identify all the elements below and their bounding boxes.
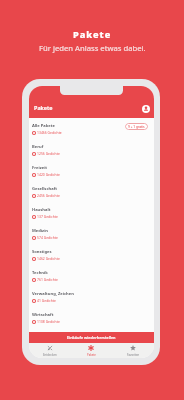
staticText: Haushalt xyxy=(32,207,51,213)
button[interactable]: Wirtschaft xyxy=(29,307,154,328)
staticText: 9 + 1 gratis xyxy=(128,125,145,129)
button[interactable]: Alle Pakete xyxy=(29,118,154,139)
staticText: 574 Gedichte xyxy=(37,235,58,240)
staticText: 41 Gedichte xyxy=(37,298,56,303)
button[interactable]: Freizeit xyxy=(29,160,154,181)
button[interactable]: Profil xyxy=(142,105,150,113)
staticText: 1108 Gedichte xyxy=(37,319,60,324)
staticText: Sonstiges xyxy=(32,249,52,255)
button[interactable]: Sonstiges xyxy=(29,244,154,265)
staticText: Alle Pakete xyxy=(32,123,55,129)
button[interactable]: Haushalt xyxy=(29,202,154,223)
staticText: Entdecken xyxy=(43,353,57,357)
staticText: 137 Gedichte xyxy=(37,214,58,219)
staticText: 761 Gedichte xyxy=(37,277,58,282)
button[interactable]: Technik xyxy=(29,265,154,286)
button[interactable]: Medizin xyxy=(29,223,154,244)
staticText: Gesellschaft xyxy=(32,186,57,192)
staticText: Medizin xyxy=(32,228,49,234)
staticText: Freizeit xyxy=(32,165,48,171)
button[interactable]: Gesellschaft xyxy=(29,181,154,202)
button[interactable]: Verwaltung, Zeichen xyxy=(29,286,154,307)
staticText: Technik xyxy=(32,270,48,276)
button[interactable]: Entdecken xyxy=(29,343,70,358)
staticText: Verwaltung, Zeichen xyxy=(32,291,74,297)
button[interactable]: Einkäufe wiederherstellen xyxy=(29,332,154,343)
staticText: Beruf xyxy=(32,144,44,150)
button[interactable]: 9 + 1 gratis xyxy=(125,123,148,130)
staticText: 1420 Gedichte xyxy=(37,172,60,177)
staticText: 1256 Gedichte xyxy=(37,151,60,156)
staticText: 2456 Gedichte xyxy=(37,193,60,198)
staticText: Favoriten xyxy=(127,353,140,357)
staticText: Wirtschaft xyxy=(32,312,54,318)
staticText: 13466 Gedichte xyxy=(37,130,62,135)
staticText: Pakete xyxy=(87,353,96,357)
staticText: Pakete xyxy=(34,104,53,111)
staticText: 1462 Gedichte xyxy=(37,256,60,261)
button[interactable]: Favoriten xyxy=(112,343,154,358)
button[interactable]: Pakete xyxy=(70,343,112,358)
staticText: Einkäufe wiederherstellen xyxy=(67,335,116,340)
button[interactable]: Beruf xyxy=(29,139,154,160)
staticText: Für jeden Anlass etwas dabei. xyxy=(39,43,146,53)
staticText: Pakete xyxy=(73,28,112,41)
